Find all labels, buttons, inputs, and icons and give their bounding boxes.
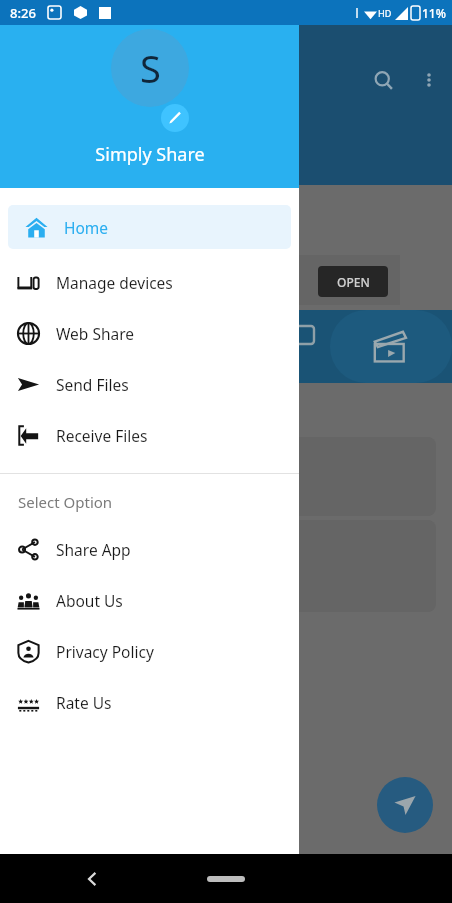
staticText: 11%: [422, 5, 446, 21]
button[interactable]: Search: [368, 65, 400, 97]
staticText: Share App: [56, 539, 131, 560]
button[interactable]: Back: [76, 854, 110, 903]
button[interactable]: Receive Files: [0, 410, 299, 461]
button[interactable]: OPEN: [318, 266, 388, 297]
staticText: 8:26: [10, 4, 36, 22]
staticText: HD: [378, 7, 392, 19]
button[interactable]: Home: [8, 205, 291, 249]
staticText: Privacy Policy: [56, 641, 154, 662]
button[interactable]: Send: [377, 777, 433, 833]
button[interactable]: Send Files: [0, 359, 299, 410]
staticText: Manage devices: [56, 272, 173, 293]
button[interactable]: Videos: [368, 325, 412, 369]
staticText: Receive Files: [56, 425, 148, 446]
staticText: Simply Share: [95, 142, 205, 167]
staticText: Web Share: [56, 323, 135, 344]
staticText: Rate Us: [56, 692, 112, 713]
staticText: Home: [64, 217, 109, 238]
staticText: Select Option: [18, 492, 113, 512]
button[interactable]: S: [111, 29, 189, 107]
button[interactable]: More options: [414, 65, 444, 95]
staticText: About Us: [56, 590, 123, 611]
button[interactable]: Share App: [0, 524, 299, 575]
staticText: OPEN: [337, 274, 370, 290]
button[interactable]: Privacy Policy: [0, 626, 299, 677]
staticText: Send Files: [56, 374, 129, 395]
staticText: S: [140, 42, 161, 94]
button[interactable]: Edit profile: [161, 104, 189, 132]
button[interactable]: About Us: [0, 575, 299, 626]
button[interactable]: Manage devices: [0, 257, 299, 308]
button[interactable]: Web Share: [0, 308, 299, 359]
button[interactable]: Home: [207, 876, 245, 882]
button[interactable]: Rate Us: [0, 677, 299, 728]
